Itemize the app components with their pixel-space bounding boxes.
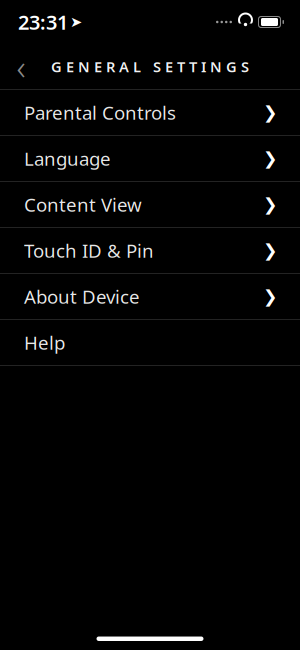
staticText: ➤ bbox=[70, 14, 82, 30]
staticText: Help bbox=[24, 330, 65, 355]
staticText: ❯ bbox=[263, 149, 278, 168]
staticText: ❯ bbox=[263, 287, 278, 306]
button[interactable]: Back bbox=[0, 44, 42, 89]
button[interactable]: About Device bbox=[0, 274, 300, 319]
staticText: ❯ bbox=[263, 103, 278, 122]
button[interactable]: Parental Controls bbox=[0, 90, 300, 135]
staticText: About Device bbox=[24, 284, 140, 309]
staticText: Touch ID & Pin bbox=[24, 238, 154, 263]
staticText: 23:31 bbox=[18, 9, 68, 35]
staticText: ❯ bbox=[263, 241, 278, 260]
button[interactable]: Content View bbox=[0, 182, 300, 227]
staticText: Parental Controls bbox=[24, 100, 176, 125]
button[interactable]: Help bbox=[0, 320, 300, 365]
button[interactable]: Touch ID & Pin bbox=[0, 228, 300, 273]
staticText: Content View bbox=[24, 192, 142, 217]
button[interactable]: Language bbox=[0, 136, 300, 181]
staticText: ‹ bbox=[16, 43, 25, 89]
staticText: ❯ bbox=[263, 195, 278, 214]
staticText: Language bbox=[24, 146, 111, 171]
staticText: G E N E R A L S E T T I N G S bbox=[51, 57, 249, 76]
